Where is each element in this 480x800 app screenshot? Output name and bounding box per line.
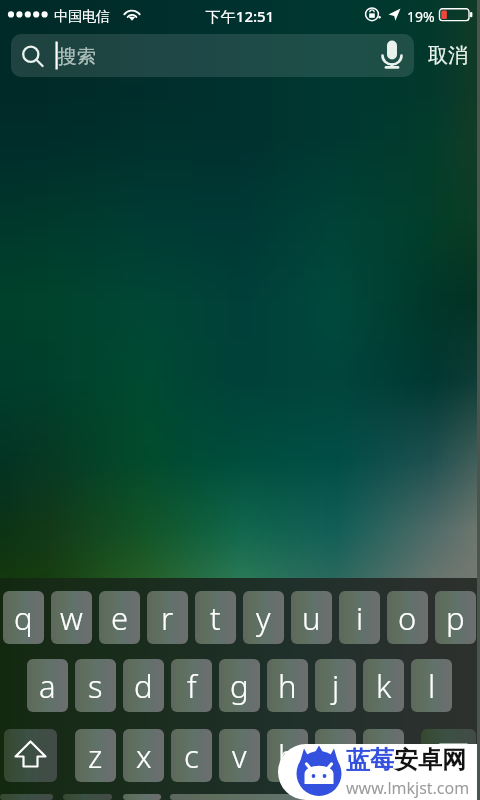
staticText: e — [111, 597, 129, 639]
button[interactable]: f — [171, 659, 212, 712]
button[interactable]: 蓝莓安卓网 www.lmkjst.com — [278, 744, 480, 800]
staticText: 下午12:51 — [0, 6, 480, 26]
staticText: v — [232, 735, 247, 777]
staticText: 中国电信 — [54, 8, 110, 26]
button[interactable]: n — [315, 729, 356, 782]
button[interactable]: k — [363, 659, 404, 712]
staticText: a — [39, 665, 56, 707]
button[interactable]: p — [435, 591, 476, 644]
staticText: j — [332, 665, 340, 707]
staticText: g — [230, 665, 249, 707]
button[interactable]: y — [243, 591, 284, 644]
button[interactable]: o — [387, 591, 428, 644]
staticText: 蓝莓 — [346, 745, 394, 775]
button[interactable]: Space — [123, 794, 161, 800]
staticText: k — [376, 665, 392, 707]
button[interactable]: b — [267, 729, 308, 782]
button[interactable]: Shift — [4, 729, 57, 782]
button[interactable]: i — [339, 591, 380, 644]
button[interactable]: u — [291, 591, 332, 644]
button[interactable]: h — [267, 659, 308, 712]
button[interactable]: j — [315, 659, 356, 712]
button[interactable]: Space — [170, 794, 370, 800]
button[interactable]: c — [171, 729, 212, 782]
staticText: t — [210, 597, 221, 639]
staticText: f — [187, 665, 197, 707]
staticText: o — [398, 597, 417, 639]
button[interactable]: Function key — [63, 794, 112, 800]
staticText: r — [161, 597, 174, 639]
button[interactable]: z — [75, 729, 116, 782]
button[interactable]: x — [123, 729, 164, 782]
button[interactable]: r — [147, 591, 188, 644]
staticText: www.lmkjst.com — [346, 777, 470, 799]
staticText: w — [60, 597, 83, 639]
button[interactable]: t — [195, 591, 236, 644]
staticText: u — [302, 597, 321, 639]
staticText: i — [356, 597, 364, 639]
button[interactable]: v — [219, 729, 260, 782]
button[interactable]: l — [411, 659, 452, 712]
staticText: h — [278, 665, 297, 707]
staticText: y — [256, 597, 271, 639]
staticText: 搜索 — [58, 45, 96, 69]
staticText: m — [370, 735, 398, 777]
button[interactable]: m — [363, 729, 404, 782]
staticText: x — [136, 735, 152, 777]
staticText: n — [326, 735, 345, 777]
staticText: 取消 — [428, 43, 468, 68]
staticText: b — [278, 735, 297, 777]
button[interactable]: 搜索 — [11, 34, 414, 77]
staticText: q — [14, 597, 33, 639]
staticText: l — [428, 665, 436, 707]
staticText: z — [88, 735, 103, 777]
button[interactable]: Function key — [0, 794, 53, 800]
button[interactable]: a — [27, 659, 68, 712]
staticText: d — [134, 665, 153, 707]
staticText: s — [88, 665, 103, 707]
staticText: c — [184, 735, 199, 777]
button[interactable]: g — [219, 659, 260, 712]
staticText: 19% — [407, 7, 435, 26]
button[interactable]: 取消 — [421, 34, 475, 77]
button[interactable]: e — [99, 591, 140, 644]
button[interactable]: q — [3, 591, 44, 644]
button[interactable]: w — [51, 591, 92, 644]
button[interactable]: Backspace — [421, 729, 476, 782]
staticText: 安卓网 — [394, 745, 466, 775]
button[interactable]: s — [75, 659, 116, 712]
button[interactable]: d — [123, 659, 164, 712]
staticText: p — [446, 597, 465, 639]
